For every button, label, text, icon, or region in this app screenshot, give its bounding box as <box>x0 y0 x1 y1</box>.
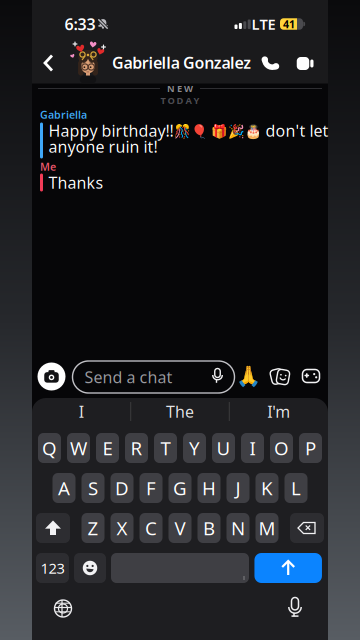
staticText: X <box>116 516 127 540</box>
staticText: U <box>216 436 230 460</box>
staticText: 6:33 <box>64 13 95 35</box>
staticText: Gabriella <box>40 107 87 122</box>
button[interactable]: E <box>96 433 119 463</box>
staticText: 🙏 <box>236 365 261 388</box>
button[interactable]: Y <box>183 433 206 463</box>
staticText: V <box>174 516 185 540</box>
staticText: Thanks <box>48 172 103 193</box>
button[interactable]: React <box>236 365 261 388</box>
button[interactable]: Send <box>254 553 322 583</box>
button[interactable]: X <box>110 513 133 543</box>
staticText: Gabriella Gonzalez <box>112 52 251 73</box>
button[interactable]: Dictation <box>287 596 303 618</box>
button[interactable]: Emoji <box>74 553 106 583</box>
button[interactable]: Q <box>38 433 61 463</box>
button[interactable]: Camera <box>37 362 65 390</box>
staticText: J <box>235 476 240 500</box>
button[interactable]: T <box>154 433 177 463</box>
staticText: Q <box>42 436 57 460</box>
button[interactable]: Shift <box>36 513 70 543</box>
button[interactable]: M <box>255 513 278 543</box>
button[interactable]: B <box>197 513 220 543</box>
staticText: A <box>58 476 70 500</box>
button[interactable]: U <box>212 433 235 463</box>
staticText: I <box>249 436 255 460</box>
staticText: Happy birthday!! <box>48 120 173 141</box>
staticText: B <box>203 516 215 540</box>
staticText: LTE <box>251 14 275 34</box>
button[interactable]: L <box>284 473 307 503</box>
button[interactable]: The <box>135 399 225 423</box>
staticText: T O D A Y <box>160 94 199 107</box>
button[interactable]: K <box>255 473 278 503</box>
staticText: M <box>258 516 275 540</box>
staticText: T <box>160 436 170 460</box>
staticText: Send a chat <box>84 366 172 388</box>
button[interactable]: Next keyboard <box>53 599 72 618</box>
button[interactable]: J <box>226 473 249 503</box>
button[interactable]: 123 <box>36 553 69 583</box>
button[interactable]: O <box>270 433 293 463</box>
button[interactable]: V <box>168 513 191 543</box>
button[interactable]: Stickers <box>269 365 291 387</box>
button[interactable]: D <box>110 473 133 503</box>
staticText: D <box>115 476 129 500</box>
staticText: 🎊🎈 🎁🎉🎂 <box>173 122 261 139</box>
button[interactable]: C <box>139 513 162 543</box>
staticText: N <box>231 516 245 540</box>
button[interactable]: S <box>81 473 104 503</box>
button[interactable]: I <box>241 433 264 463</box>
staticText: I <box>79 401 84 422</box>
button[interactable]: Voice message <box>209 366 225 386</box>
staticText: W <box>70 436 87 460</box>
staticText: L <box>291 476 301 500</box>
button[interactable]: I'm <box>234 399 324 423</box>
staticText: N E W <box>167 82 193 95</box>
staticText: The <box>166 401 194 422</box>
button[interactable]: R <box>125 433 148 463</box>
staticText: 41 <box>283 17 295 31</box>
button[interactable]: P <box>299 433 322 463</box>
button[interactable]: I <box>36 399 126 423</box>
button[interactable]: Video Call <box>295 54 317 72</box>
staticText: F <box>146 476 156 500</box>
button[interactable]: Back <box>41 54 55 72</box>
button[interactable]: Delete <box>290 513 324 543</box>
button[interactable]: G <box>168 473 191 503</box>
button[interactable]: A <box>52 473 75 503</box>
button[interactable]: F <box>139 473 162 503</box>
staticText: P <box>305 436 316 460</box>
button[interactable]: N <box>226 513 249 543</box>
staticText: O <box>274 436 289 460</box>
staticText: R <box>130 436 142 460</box>
staticText: I'm <box>267 401 290 422</box>
staticText: K <box>261 476 273 500</box>
staticText: H <box>202 476 216 500</box>
staticText: anyone ruin it! <box>48 136 157 157</box>
button[interactable]: Games <box>300 367 322 385</box>
button[interactable]: Call <box>260 52 282 74</box>
button[interactable]: Z <box>81 513 104 543</box>
button[interactable]: W <box>67 433 90 463</box>
button[interactable]: Send a chat <box>72 361 234 393</box>
staticText: Y <box>189 436 200 460</box>
staticText: S <box>88 476 98 500</box>
staticText: don't let <box>261 120 328 141</box>
staticText: Z <box>87 516 98 540</box>
staticText: C <box>145 516 157 540</box>
staticText: 123 <box>40 558 64 578</box>
button[interactable]: Profile <box>65 37 111 85</box>
button[interactable]: H <box>197 473 220 503</box>
staticText: E <box>102 436 112 460</box>
staticText: Me <box>40 159 56 174</box>
staticText: G <box>173 476 187 500</box>
